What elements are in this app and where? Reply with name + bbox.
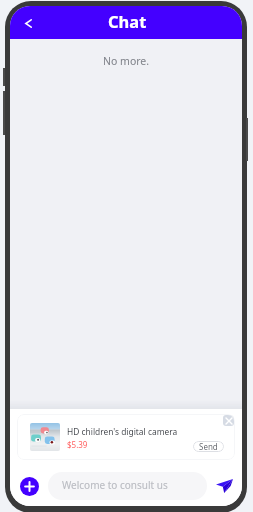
staticText: Chat [108,10,147,32]
button[interactable]: Send [193,441,224,452]
button[interactable]: Welcome to consult us [48,472,207,500]
staticText: No more. [103,54,150,68]
staticText: Send [199,441,218,452]
button[interactable]: Add [20,477,39,496]
staticText: HD children's digital camera [67,426,178,437]
staticText: Welcome to consult us [62,478,168,492]
button[interactable]: Send message [212,474,236,498]
button[interactable]: HD children's digital camera [17,414,235,460]
button[interactable]: Back [15,6,41,39]
button[interactable]: Close [223,415,234,426]
staticText: $5.39 [67,439,88,450]
